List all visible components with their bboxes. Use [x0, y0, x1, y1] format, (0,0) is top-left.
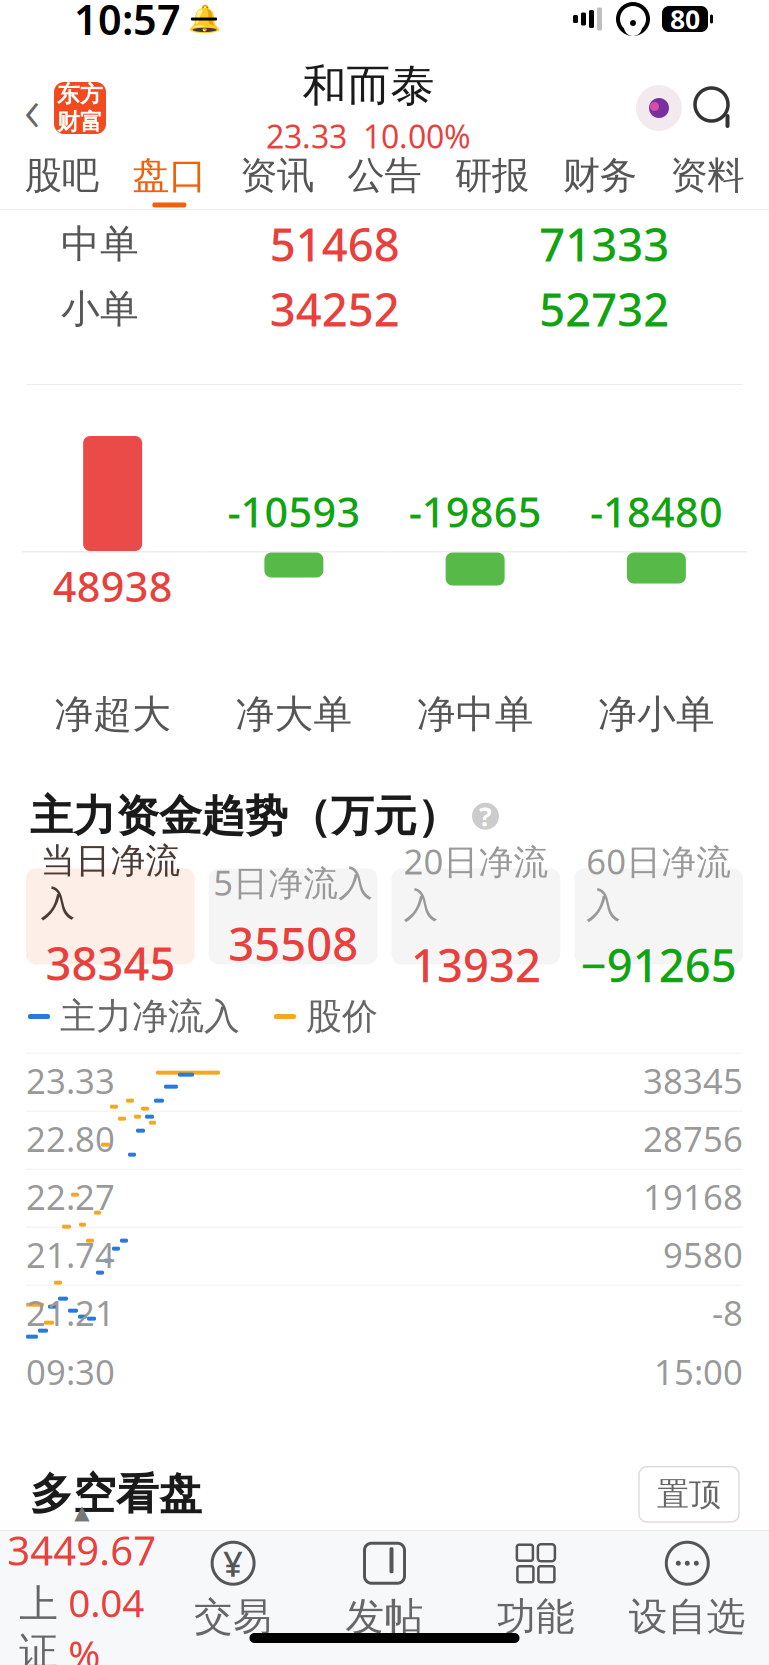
staticText: 20日净流入: [403, 838, 548, 927]
staticText: 3449.67: [7, 1523, 156, 1576]
staticText: 财务: [563, 153, 637, 198]
staticText: 0.04%: [68, 1576, 144, 1665]
staticText: 15:00: [654, 1349, 743, 1395]
staticText: 9580: [663, 1232, 743, 1278]
staticText: 09:30: [26, 1349, 115, 1395]
staticText: 功能: [497, 1593, 575, 1641]
staticText: 净小单: [598, 690, 715, 738]
staticText: 净超大: [54, 690, 171, 738]
staticText: 21.74: [26, 1232, 115, 1278]
staticText: 东方: [57, 80, 103, 108]
staticText: -18480: [590, 484, 723, 539]
button[interactable]: 研报: [438, 152, 546, 208]
button[interactable]: 发帖: [309, 1539, 460, 1641]
staticText: 主力净流入: [60, 994, 240, 1039]
staticText: 盘口: [132, 153, 206, 198]
button[interactable]: AI assistant: [631, 78, 687, 138]
button[interactable]: Back: [10, 78, 54, 138]
staticText: 当日净流入: [40, 840, 180, 925]
button[interactable]: 盘口: [116, 152, 223, 208]
staticText: 股价: [306, 994, 378, 1039]
button[interactable]: ¥: [157, 1539, 309, 1641]
button[interactable]: 财务: [546, 152, 653, 208]
staticText: 22.80: [26, 1116, 115, 1162]
staticText: ‹: [24, 67, 40, 149]
staticText: 38345: [643, 1058, 743, 1104]
staticText: 小单: [61, 285, 139, 333]
button[interactable]: ▲: [6, 1501, 157, 1665]
staticText: 48938: [53, 558, 173, 613]
staticText: 主力资金趋势（万元）: [30, 790, 460, 842]
button[interactable]: 20日净流入: [391, 868, 560, 964]
staticText: 51468: [270, 214, 400, 274]
staticText: 多空看盘: [30, 1468, 202, 1520]
button[interactable]: 股吧: [8, 152, 116, 208]
staticText: ▲: [74, 1501, 89, 1523]
staticText: ?: [479, 798, 492, 834]
staticText: 中单: [61, 220, 139, 268]
staticText: 和而泰: [302, 59, 434, 113]
staticText: 35508: [228, 913, 358, 973]
staticText: 19168: [643, 1174, 743, 1220]
staticText: 21.21: [26, 1290, 115, 1336]
button[interactable]: 设自选: [612, 1539, 763, 1641]
staticText: 71333: [539, 214, 669, 274]
staticText: 13932: [411, 935, 541, 995]
staticText: 置顶: [657, 1475, 721, 1514]
button[interactable]: 置顶: [639, 1467, 739, 1522]
staticText: 发帖: [345, 1593, 423, 1641]
staticText: 公告: [347, 153, 421, 198]
button[interactable]: 公告: [331, 152, 438, 208]
staticText: -19865: [409, 484, 542, 539]
staticText: 净中单: [417, 690, 534, 738]
staticText: 资讯: [240, 153, 314, 198]
staticText: 28756: [643, 1116, 743, 1162]
staticText: 研报: [455, 153, 529, 198]
staticText: −91265: [581, 935, 737, 995]
staticText: 🔔: [187, 4, 220, 34]
staticText: 23.33: [26, 1058, 115, 1104]
button[interactable]: East Money home: [54, 82, 106, 134]
staticText: 52732: [539, 279, 669, 339]
staticText: 5日净流入: [213, 859, 373, 905]
staticText: 设自选: [629, 1593, 746, 1641]
button[interactable]: 5日净流入: [209, 868, 378, 964]
button[interactable]: 60日净流入: [574, 868, 743, 964]
staticText: ¥: [223, 1540, 243, 1586]
staticText: 38345: [45, 933, 175, 993]
staticText: 上证: [19, 1580, 58, 1665]
staticText: 80: [670, 1, 700, 37]
button[interactable]: 资讯: [223, 152, 331, 208]
staticText: 60日净流入: [586, 838, 731, 927]
staticText: 股吧: [25, 153, 99, 198]
button[interactable]: 资料: [653, 152, 761, 208]
staticText: 资料: [670, 153, 744, 198]
staticText: 22.27: [26, 1174, 115, 1220]
staticText: 财富: [57, 108, 103, 136]
staticText: -8: [712, 1290, 743, 1336]
staticText: 10:57: [74, 0, 181, 46]
staticText: 交易: [194, 1593, 272, 1641]
button[interactable]: 功能: [460, 1539, 612, 1641]
staticText: 23.33 10.00%: [266, 115, 471, 157]
button[interactable]: Search: [687, 78, 743, 138]
staticText: 34252: [270, 279, 400, 339]
button[interactable]: 当日净流入: [26, 868, 195, 964]
staticText: -10593: [227, 484, 360, 539]
staticText: 净大单: [235, 690, 352, 738]
button[interactable]: Help: [472, 803, 499, 830]
